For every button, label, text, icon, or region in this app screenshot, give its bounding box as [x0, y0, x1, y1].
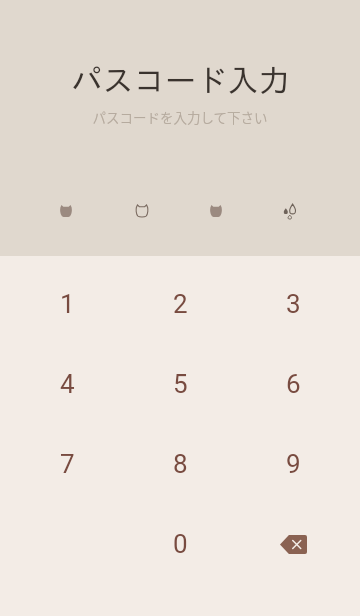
button[interactable]: 6 [237, 344, 350, 424]
button[interactable]: 7 [10, 424, 124, 504]
other: Backspace [280, 535, 307, 554]
button[interactable]: 9 [237, 424, 350, 504]
button[interactable]: Backspace [237, 504, 350, 584]
staticText: 1 [60, 289, 75, 319]
button[interactable]: 3 [237, 264, 350, 344]
button[interactable]: 4 [10, 344, 124, 424]
staticText: 6 [286, 369, 301, 399]
button[interactable]: 0 [124, 504, 237, 584]
staticText: 9 [286, 449, 301, 479]
staticText: 8 [173, 449, 188, 479]
staticText: パスコード入力 [71, 65, 290, 96]
staticText: 3 [286, 289, 301, 319]
button[interactable]: 5 [124, 344, 237, 424]
staticText: 7 [60, 449, 75, 479]
staticText: 5 [173, 369, 188, 399]
staticText: 4 [60, 369, 75, 399]
button[interactable]: 1 [10, 264, 124, 344]
staticText: 2 [173, 289, 188, 319]
button[interactable]: 2 [124, 264, 237, 344]
staticText: 0 [173, 529, 188, 559]
button[interactable]: 8 [124, 424, 237, 504]
staticText: パスコードを入力して下さい [92, 107, 268, 127]
